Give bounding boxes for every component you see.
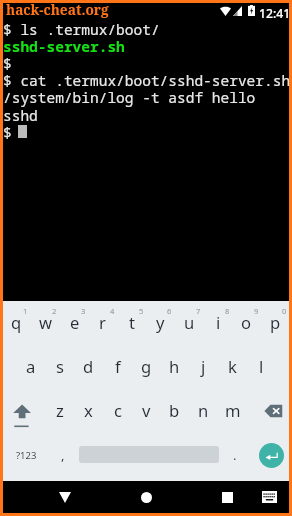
staticText: 8	[225, 306, 230, 316]
staticText: l	[259, 355, 264, 378]
button[interactable]: l	[247, 344, 276, 388]
button[interactable]: Home	[124, 481, 168, 513]
staticText: ?123	[16, 449, 37, 462]
button[interactable]: ,	[50, 433, 75, 477]
button[interactable]: k	[218, 344, 247, 388]
button[interactable]: m	[218, 388, 247, 433]
staticText: n	[198, 399, 209, 422]
staticText: 6	[167, 306, 172, 316]
button[interactable]: y	[146, 301, 175, 344]
staticText: j	[201, 355, 206, 378]
staticText: $ cat .termux/boot/sshd-server.sh	[3, 70, 289, 90]
button[interactable]: v	[132, 388, 161, 433]
staticText: t	[129, 311, 135, 334]
button[interactable]: n	[189, 388, 218, 433]
staticText: v	[142, 399, 151, 422]
button[interactable]: z	[45, 388, 74, 433]
staticText: y	[156, 311, 165, 334]
button[interactable]: ?123	[5, 433, 48, 477]
button[interactable]: w	[31, 301, 60, 344]
button[interactable]: e	[60, 301, 89, 344]
staticText: sshd-server.sh	[3, 36, 289, 56]
staticText: p	[270, 311, 281, 334]
staticText: i	[216, 311, 221, 334]
button[interactable]: j	[189, 344, 218, 388]
button[interactable]: c	[103, 388, 132, 433]
staticText: z	[56, 399, 64, 422]
staticText: d	[83, 355, 94, 378]
button[interactable]: q	[2, 301, 31, 344]
staticText: b	[169, 399, 180, 422]
button[interactable]: Recents	[205, 481, 249, 513]
button[interactable]: t	[117, 301, 146, 344]
staticText: 4	[110, 306, 115, 316]
staticText: 9	[254, 306, 259, 316]
staticText: 1	[23, 306, 28, 316]
button[interactable]: p	[261, 301, 290, 344]
staticText: 12:41	[259, 5, 291, 22]
button[interactable]: s	[45, 344, 74, 388]
button[interactable]: a	[16, 344, 45, 388]
staticText: o	[241, 311, 252, 334]
button[interactable]: d	[74, 344, 103, 388]
staticText: c	[114, 399, 122, 422]
button[interactable]: f	[103, 344, 132, 388]
staticText: k	[228, 355, 237, 378]
staticText: r	[99, 311, 106, 334]
staticText: u	[184, 311, 195, 334]
staticText: s	[56, 355, 64, 378]
button[interactable]: u	[175, 301, 204, 344]
staticText: q	[11, 311, 22, 334]
staticText: e	[70, 311, 80, 334]
button[interactable]: x	[74, 388, 103, 433]
button[interactable]: Enter	[259, 443, 284, 468]
staticText: w	[39, 311, 53, 334]
staticText: x	[84, 399, 93, 422]
staticText: $	[3, 122, 289, 142]
staticText: 7	[196, 306, 201, 316]
button[interactable]: .	[223, 433, 246, 477]
staticText: 3	[81, 306, 86, 316]
staticText: /system/bin/log -t asdf hello	[3, 87, 289, 107]
button[interactable]: h	[160, 344, 189, 388]
staticText: f	[115, 355, 121, 378]
button[interactable]: Back	[43, 481, 87, 513]
button[interactable]: r	[88, 301, 117, 344]
staticText: sshd	[3, 105, 289, 125]
button[interactable]: b	[160, 388, 189, 433]
staticText: ,	[61, 446, 65, 464]
staticText: g	[141, 355, 152, 378]
button[interactable]: i	[204, 301, 233, 344]
button[interactable]: Backspace	[255, 388, 291, 433]
staticText: 2	[52, 306, 57, 316]
button[interactable]: Shift	[3, 388, 46, 433]
button[interactable]: Show keyboard	[247, 481, 291, 513]
staticText: m	[225, 399, 241, 422]
button[interactable]: g	[132, 344, 161, 388]
button[interactable]: o	[232, 301, 261, 344]
staticText: a	[26, 355, 36, 378]
staticText: h	[169, 355, 180, 378]
staticText: .	[233, 446, 237, 464]
staticText: $	[3, 53, 289, 73]
staticText: 5	[139, 306, 144, 316]
staticText: 0	[282, 306, 287, 316]
staticText: hack-cheat.org	[6, 0, 109, 19]
staticText: $ ls .termux/boot/	[3, 19, 289, 39]
